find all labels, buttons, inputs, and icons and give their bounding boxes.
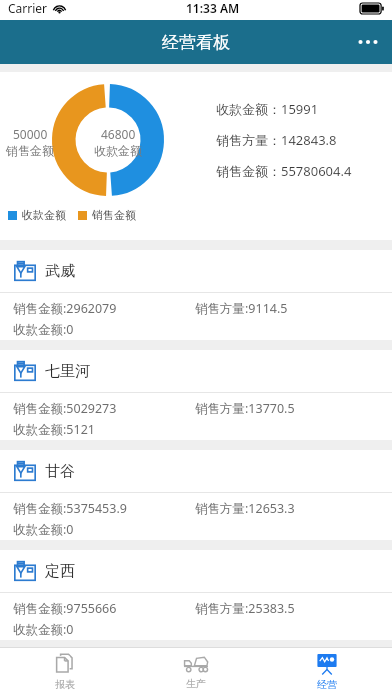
staticText: 销售金额:9755666 [13,600,117,617]
button[interactable]: More options [344,20,392,64]
staticText: 收款金额:0 [13,621,74,638]
staticText: 甘谷 [45,462,75,481]
button[interactable]: 武威 [0,250,392,340]
staticText: 收款金额 [94,143,142,158]
staticText: 武威 [45,262,75,281]
button[interactable]: 甘谷 [0,450,392,540]
staticText: 收款金额:0 [13,521,74,538]
staticText: 销售方量:12653.3 [195,500,295,517]
staticText: 销售金额 [6,143,54,158]
staticText: 142843.8 [281,131,337,149]
staticText: 55780604.4 [281,162,352,180]
button[interactable]: 定西 [0,550,392,640]
staticText: 收款金额:5121 [13,421,95,438]
staticText: 销售金额:2962079 [13,300,117,317]
staticText: 11:33 AM [186,0,240,16]
staticText: 销售方量:9114.5 [195,300,288,317]
button[interactable]: 七里河 [0,350,392,440]
staticText: 销售方量： [216,132,281,148]
staticText: 15991 [281,100,319,118]
staticText: 销售金额:5375453.9 [13,500,127,517]
staticText: 46800 [101,126,136,142]
staticText: 销售金额： [216,163,281,179]
staticText: 销售方量:13770.5 [195,400,295,417]
staticText: 销售金额 [92,208,136,222]
staticText: 七里河 [45,362,90,381]
button[interactable]: 报表 [0,648,130,696]
staticText: 收款金额:0 [13,321,74,338]
staticText: 销售方量:25383.5 [195,600,295,617]
staticText: 50000 [13,126,48,142]
button[interactable]: 经营 [261,648,392,696]
staticText: 经营 [317,678,337,691]
staticText: 销售金额:5029273 [13,400,117,417]
staticText: 报表 [55,678,75,691]
staticText: 收款金额 [22,208,66,222]
staticText: 生产 [186,677,206,690]
staticText: 收款金额： [216,101,281,117]
button[interactable]: 生产 [130,648,261,696]
staticText: 经营看板 [162,32,230,53]
staticText: Carrier [8,0,48,16]
staticText: 定西 [45,562,75,581]
